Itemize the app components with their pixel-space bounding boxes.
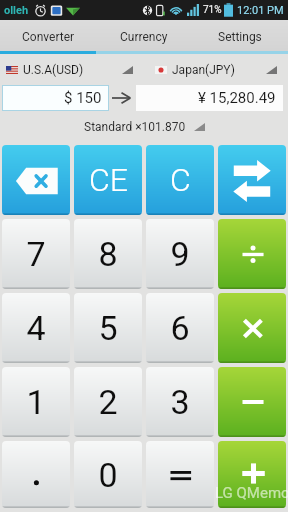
button[interactable]: 7 — [2, 219, 70, 289]
button[interactable]: 3 — [146, 367, 214, 437]
staticText: Converter — [22, 30, 75, 44]
button[interactable]: Decimal point — [2, 441, 70, 508]
staticText: 4 — [26, 308, 46, 348]
staticText: 6 — [170, 308, 190, 348]
button[interactable]: 8 — [74, 219, 142, 289]
staticText: 71% — [203, 4, 222, 16]
button[interactable]: Divide — [218, 219, 286, 289]
staticText: Settings — [218, 30, 262, 44]
button[interactable]: Multiply — [218, 293, 286, 363]
button[interactable]: $ 150 — [2, 85, 109, 111]
staticText: 3 — [170, 382, 190, 422]
button[interactable]: Backspace — [2, 145, 70, 215]
staticText: 9 — [170, 234, 190, 274]
button[interactable]: 4 — [2, 293, 70, 363]
button[interactable]: Swap currencies — [218, 145, 286, 215]
staticText: C — [170, 161, 191, 199]
button[interactable]: 6 — [146, 293, 214, 363]
staticText: 5 — [98, 308, 118, 348]
button[interactable]: Settings — [192, 20, 288, 54]
staticText: ¥ 15,280.49 — [198, 89, 276, 107]
staticText: Japan(JPY) — [172, 63, 235, 77]
button[interactable]: C — [146, 145, 214, 215]
staticText: olleh — [4, 4, 29, 17]
button[interactable]: CE — [74, 145, 142, 215]
staticText: 8 — [98, 234, 118, 274]
staticText: 7 — [26, 234, 46, 274]
button[interactable]: Converter — [0, 20, 96, 54]
button[interactable]: Plus — [218, 441, 286, 508]
staticText: $ 150 — [64, 89, 102, 107]
staticText: 1 — [26, 382, 46, 422]
button[interactable]: 2 — [74, 367, 142, 437]
button[interactable]: Japan(JPY) — [144, 57, 288, 83]
button[interactable]: Minus — [218, 367, 286, 437]
button[interactable]: Currency — [96, 20, 192, 54]
button[interactable]: U.S.A(USD) — [0, 57, 144, 83]
button[interactable]: 5 — [74, 293, 142, 363]
button[interactable]: ¥ 15,280.49 — [136, 85, 283, 111]
button[interactable]: Standard ×101.870 — [79, 117, 210, 137]
button[interactable]: Equals — [146, 441, 214, 508]
button[interactable]: 9 — [146, 219, 214, 289]
staticText: 2 — [98, 382, 118, 422]
staticText: 0 — [98, 455, 118, 495]
staticText: CE — [89, 161, 128, 199]
staticText: Standard ×101.870 — [84, 120, 186, 134]
button[interactable]: 0 — [74, 441, 142, 508]
staticText: U.S.A(USD) — [23, 63, 84, 77]
staticText: LG QMemo — [215, 484, 288, 502]
button[interactable]: 1 — [2, 367, 70, 437]
staticText: Currency — [120, 30, 168, 44]
staticText: 12:01 PM — [237, 4, 284, 17]
